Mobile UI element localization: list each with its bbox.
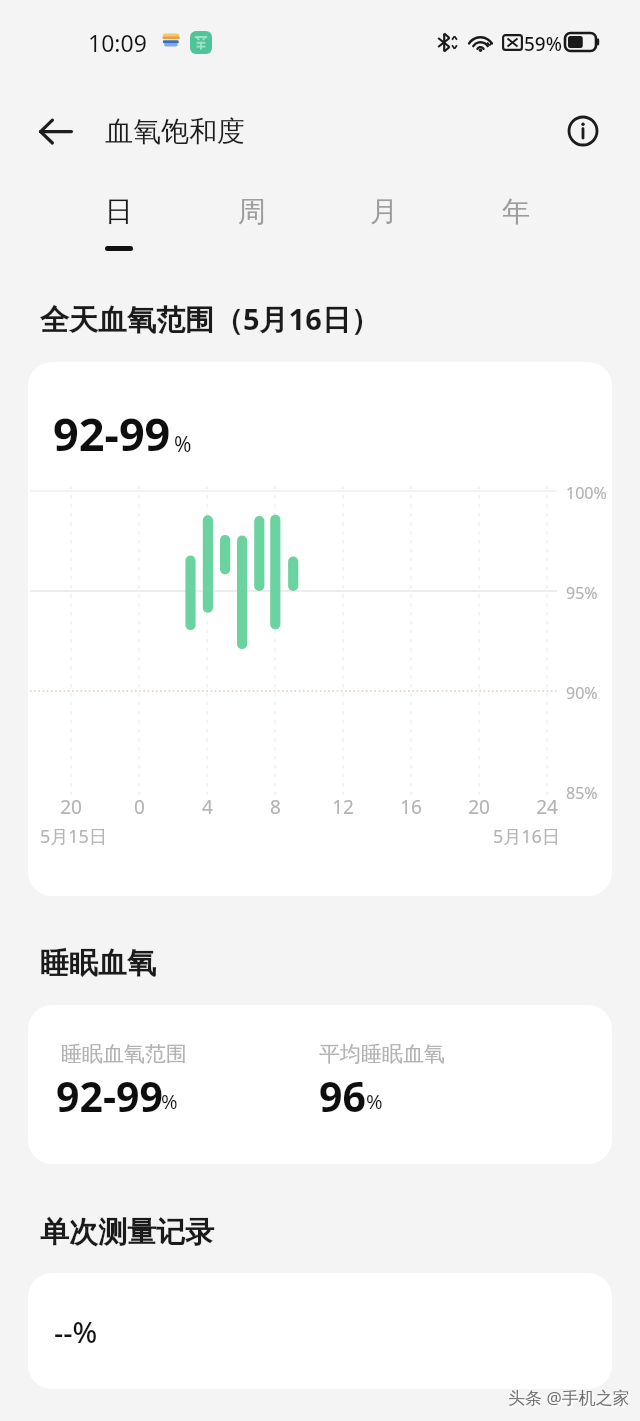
staticText: 月 [370,194,398,229]
button[interactable]: 睡眠血氧范围 [28,1005,612,1164]
staticText: 10:09 [88,27,147,58]
button[interactable]: Back [26,103,86,163]
staticText: 59% [524,31,562,57]
button[interactable]: Info [559,107,607,155]
staticText: 单次测量记录 [40,1214,214,1251]
staticText: % [174,430,192,459]
staticText: 95% [566,582,598,604]
staticText: 4 [202,794,213,820]
staticText: --% [54,1312,98,1351]
staticText: 日 [105,194,133,229]
staticText: 92-99 [53,403,171,464]
staticText: 平均睡眠血氧 [319,1041,445,1067]
staticText: 5月16日 [493,824,560,849]
button[interactable]: 周 [204,184,300,258]
staticText: 5月15日 [40,824,107,849]
staticText: 头条 @手机之家 [508,1386,630,1409]
staticText: 24 [536,794,558,820]
staticText: 12 [332,794,354,820]
staticText: 16 [400,794,422,820]
staticText: 全天血氧范围（5月16日） [40,299,380,339]
button[interactable]: 月 [336,184,432,258]
staticText: % [366,1088,383,1115]
staticText: 96 [319,1068,366,1124]
button[interactable]: 日 [71,184,167,258]
staticText: 血氧饱和度 [105,114,245,149]
staticText: 睡眠血氧 [40,945,156,982]
staticText: 年 [502,194,530,229]
staticText: 周 [238,194,266,229]
staticText: 头条 @手机之家 [510,1388,632,1411]
staticText: 20 [60,794,82,820]
staticText: 92-99 [56,1068,163,1124]
staticText: 85% [566,782,598,804]
staticText: 20 [468,794,490,820]
staticText: 0 [134,794,145,820]
staticText: % [161,1088,178,1115]
button[interactable]: 年 [468,184,564,258]
button[interactable]: 92-99 [28,362,612,896]
staticText: 8 [270,794,281,820]
staticText: 90% [566,682,598,704]
button[interactable]: --% [28,1273,612,1389]
staticText: 睡眠血氧范围 [61,1041,187,1067]
staticText: 100% [566,482,607,504]
